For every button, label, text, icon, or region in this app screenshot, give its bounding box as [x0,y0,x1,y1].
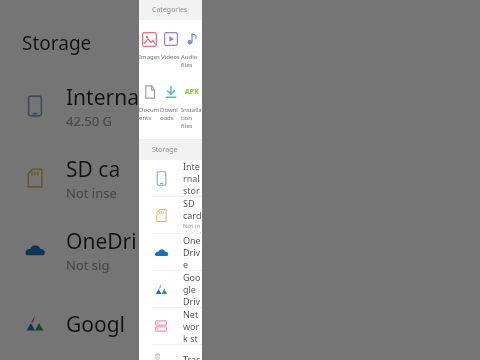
staticText: 42.50 G [66,112,113,130]
button[interactable]: Audio files [181,26,202,71]
button[interactable]: Trash [139,353,202,360]
staticText: Google Drive [183,271,202,307]
staticText: Internal [66,83,145,112]
staticText: OneDrive [183,234,202,270]
staticText: Videos [161,53,180,61]
staticText: SD card [183,197,202,221]
button[interactable]: Documents [139,79,160,124]
button[interactable]: Downloads [160,79,181,124]
button[interactable]: Google Drive [139,271,202,307]
button[interactable]: Network storage [139,308,202,344]
staticText: Trash [183,353,202,360]
staticText: Network storage [183,308,202,344]
staticText: Categories [152,5,188,15]
button[interactable]: SD card [139,197,202,233]
staticText: Storage [152,145,178,155]
button[interactable]: Videos [160,26,181,63]
staticText: Documents [139,106,160,122]
staticText: Installation files [181,106,202,130]
staticText: Googl [66,310,126,339]
staticText: APK [185,87,199,97]
staticText: OneDri [66,227,137,256]
button[interactable]: Internal storage [139,160,202,196]
staticText: Internal storage [183,160,202,196]
staticText: SD ca [66,155,121,184]
button[interactable]: APK [181,79,202,132]
staticText: Storage [22,30,92,56]
staticText: Not inserted [183,222,202,233]
staticText: Images [139,53,160,61]
staticText: Audio files [181,53,202,69]
button[interactable]: OneDrive [139,234,202,270]
button[interactable]: Images [139,26,160,63]
staticText: Not sig [66,256,110,274]
staticText: Not inse [66,184,117,202]
staticText: Downloads [160,106,181,122]
